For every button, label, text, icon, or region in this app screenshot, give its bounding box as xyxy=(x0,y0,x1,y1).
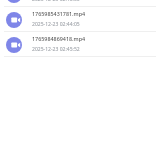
staticText: 1765984869418.mp4 xyxy=(32,35,86,42)
button[interactable]: 1765985431786.mp4 xyxy=(0,0,160,7)
staticText: 2025-12-23 02:44:05 xyxy=(32,21,80,28)
staticText: 2025-12-23 02:45:52 xyxy=(32,46,80,53)
button[interactable]: 1765985431781.mp4 xyxy=(0,7,160,32)
staticText: 2025-12-23 02:43:50 xyxy=(32,0,80,3)
staticText: 1765985431781.mp4 xyxy=(32,10,86,17)
button[interactable]: 1765984869418.mp4 xyxy=(0,32,160,57)
